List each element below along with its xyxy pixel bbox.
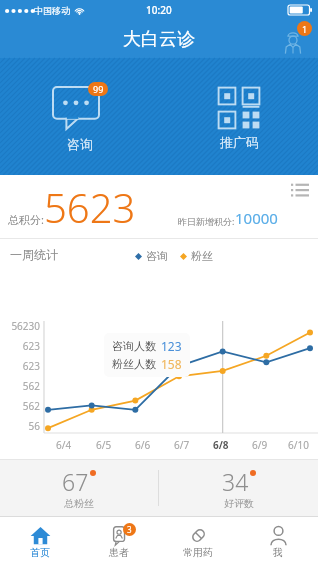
staticText: 6/10	[288, 438, 309, 452]
staticText: 56	[28, 419, 40, 433]
staticText: 昨日新增积分:	[178, 215, 235, 227]
staticText: 咨询	[146, 249, 168, 263]
staticText: 562	[22, 399, 40, 413]
button[interactable]: 常用药	[158, 517, 238, 566]
staticText: 总积分:	[8, 212, 44, 227]
staticText: 总粉丝	[64, 497, 94, 510]
button[interactable]: 34	[159, 460, 318, 516]
staticText: 10:20	[146, 3, 172, 17]
staticText: 623	[22, 339, 40, 353]
staticText: 一周统计	[10, 247, 58, 262]
staticText: 咨询人数	[112, 339, 156, 353]
staticText: 中国移动	[34, 5, 70, 16]
button[interactable]: Doctor profile	[276, 22, 310, 56]
staticText: 推广码	[220, 134, 259, 150]
staticText: 6/4	[56, 438, 72, 452]
button[interactable]: 推广码	[211, 78, 267, 156]
staticText: 10000	[235, 208, 278, 228]
staticText: 5623	[44, 180, 136, 234]
button[interactable]: 99	[46, 76, 114, 158]
staticText: 首页	[30, 546, 50, 559]
button[interactable]: 首页	[0, 517, 79, 566]
staticText: 6/5	[96, 438, 112, 452]
staticText: 好评数	[224, 497, 254, 510]
staticText: 1	[302, 23, 308, 35]
staticText: 158	[161, 356, 182, 372]
staticText: 大白云诊	[123, 28, 195, 51]
staticText: 我	[273, 546, 283, 559]
staticText: 67	[62, 466, 89, 497]
staticText: 6/6	[135, 438, 151, 452]
staticText: 6/8	[213, 438, 229, 452]
staticText: 623	[22, 359, 40, 373]
button[interactable]: List	[291, 182, 309, 196]
staticText: 56230	[11, 319, 40, 333]
staticText: 3	[127, 524, 132, 535]
button[interactable]: 3	[79, 517, 158, 566]
staticText: 咨询	[67, 136, 93, 152]
staticText: 常用药	[183, 546, 213, 559]
staticText: 6/9	[252, 438, 268, 452]
staticText: 6/7	[174, 438, 190, 452]
button[interactable]: 67	[0, 460, 158, 516]
staticText: 34	[222, 466, 249, 497]
staticText: 粉丝	[191, 249, 213, 263]
staticText: 123	[161, 338, 182, 354]
button[interactable]: 我	[238, 517, 318, 566]
staticText: 粉丝人数	[112, 357, 156, 371]
staticText: 患者	[109, 546, 129, 559]
staticText: 562	[22, 379, 40, 393]
staticText: 99	[93, 83, 104, 95]
